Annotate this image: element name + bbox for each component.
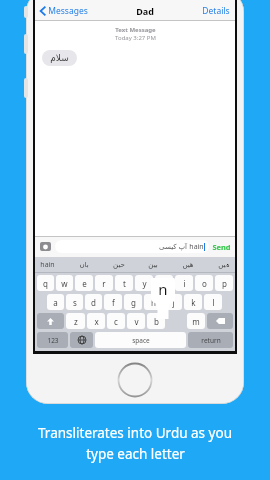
button[interactable]: حین	[113, 261, 125, 269]
staticText: space	[132, 336, 150, 345]
button[interactable]: d	[85, 294, 102, 310]
staticText: u	[162, 278, 167, 289]
button[interactable]: Switch keyboard	[70, 332, 93, 348]
staticText: b	[154, 316, 159, 327]
button[interactable]: Camera	[39, 240, 52, 253]
staticText: Transliterates into Urdu as you	[38, 424, 232, 442]
staticText: v	[134, 316, 139, 327]
staticText: n	[158, 279, 168, 299]
staticText: x	[94, 316, 99, 327]
button[interactable]: return	[188, 332, 233, 348]
staticText: hain	[40, 260, 55, 270]
staticText: حین	[113, 261, 125, 269]
button[interactable]: s	[66, 294, 83, 310]
button[interactable]: e	[75, 275, 93, 291]
staticText: a	[53, 297, 58, 308]
button[interactable]: t	[115, 275, 133, 291]
staticText: g	[131, 297, 136, 308]
button[interactable]: space	[95, 332, 186, 348]
button[interactable]: h	[144, 294, 162, 310]
staticText: Today 3:27 PM	[115, 34, 156, 42]
staticText: بین	[148, 261, 158, 269]
staticText: Details	[202, 5, 230, 17]
staticText: e	[82, 278, 87, 289]
staticText: j	[172, 297, 175, 308]
button[interactable]: k	[184, 294, 202, 310]
button[interactable]: باں	[79, 261, 89, 269]
staticText: 123	[47, 336, 59, 345]
button[interactable]: i	[175, 275, 193, 291]
staticText: r	[102, 278, 106, 289]
button[interactable]: آپ کیسی	[55, 240, 209, 253]
button[interactable]: l	[204, 294, 222, 310]
button[interactable]: f	[104, 294, 122, 310]
button[interactable]: u	[155, 275, 173, 291]
button[interactable]: y	[135, 275, 153, 291]
staticText: Text Message	[115, 26, 156, 34]
staticText: c	[114, 316, 118, 327]
button[interactable]: 123	[37, 332, 68, 348]
button[interactable]: a	[47, 294, 64, 310]
staticText: f	[112, 297, 115, 308]
staticText: y	[142, 278, 147, 289]
button[interactable]: b	[147, 313, 165, 329]
button[interactable]: q	[37, 275, 54, 291]
button[interactable]: ھیں	[182, 261, 194, 269]
staticText: hain	[189, 242, 204, 252]
staticText: l	[212, 297, 215, 308]
button[interactable]: Details	[202, 5, 230, 17]
staticText: w	[61, 278, 68, 289]
button[interactable]: o	[195, 275, 213, 291]
staticText: return	[201, 336, 221, 345]
staticText: type each letter	[86, 445, 185, 463]
button[interactable]: v	[127, 313, 145, 329]
staticText: p	[222, 278, 227, 289]
button[interactable]: سلام	[42, 50, 77, 66]
button[interactable]: Delete	[207, 313, 233, 329]
staticText: ھیں	[182, 261, 194, 269]
staticText: آپ کیسی	[159, 242, 187, 252]
button[interactable]: Send	[212, 242, 231, 252]
staticText: ہیں	[218, 261, 230, 269]
button[interactable]: p	[215, 275, 233, 291]
staticText: سلام	[50, 53, 69, 63]
staticText: Dad	[136, 5, 154, 17]
staticText: Messages	[48, 5, 88, 17]
button[interactable]: c	[107, 313, 125, 329]
button[interactable]: j	[164, 294, 182, 310]
button[interactable]: بین	[148, 261, 158, 269]
button[interactable]: hain	[40, 260, 55, 270]
staticText: باں	[79, 261, 89, 269]
button[interactable]: Shift	[37, 313, 64, 329]
staticText: h	[151, 297, 156, 308]
button[interactable]	[167, 313, 185, 329]
staticText: q	[43, 278, 48, 289]
button[interactable]: g	[124, 294, 142, 310]
staticText: m	[192, 316, 200, 327]
button[interactable]: ہیں	[218, 261, 230, 269]
staticText: z	[74, 316, 78, 327]
staticText: i	[183, 278, 186, 289]
staticText: Send	[212, 242, 231, 252]
button[interactable]: r	[95, 275, 113, 291]
staticText: o	[202, 278, 207, 289]
button[interactable]: x	[87, 313, 105, 329]
button[interactable]: z	[66, 313, 85, 329]
staticText: t	[123, 278, 126, 289]
staticText: d	[91, 297, 96, 308]
button[interactable]: w	[56, 275, 73, 291]
staticText: s	[73, 297, 77, 308]
staticText: k	[191, 297, 196, 308]
button[interactable]: m	[187, 313, 205, 329]
button[interactable]: Messages	[40, 5, 88, 17]
